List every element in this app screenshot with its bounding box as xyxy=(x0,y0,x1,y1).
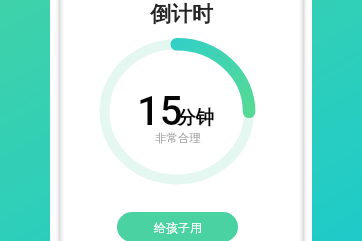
staticText: 给孩子用 xyxy=(154,220,202,235)
staticText: 非常合理 xyxy=(155,131,201,145)
button[interactable]: 给孩子用 xyxy=(117,212,238,241)
staticText: 15 xyxy=(137,88,183,135)
staticText: 倒计时 xyxy=(150,1,213,27)
staticText: 分钟 xyxy=(177,106,214,129)
